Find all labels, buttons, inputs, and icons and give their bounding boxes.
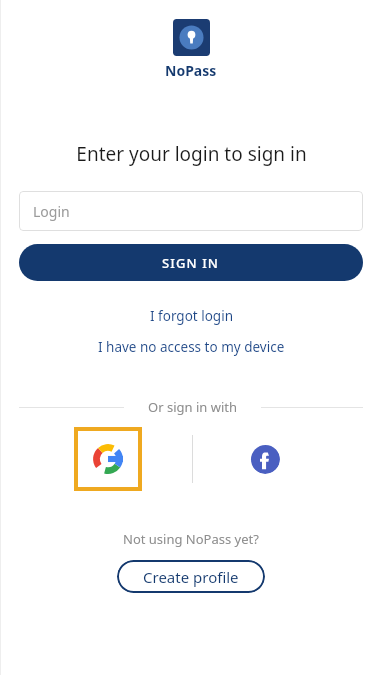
button[interactable]: Sign in with Facebook (250, 444, 280, 474)
staticText: SIGN IN (162, 254, 220, 272)
button[interactable]: I have no access to my device (88, 335, 295, 359)
button[interactable]: Sign in with Google (74, 427, 142, 491)
staticText: Or sign in with (148, 398, 237, 416)
staticText: Not using NoPass yet? (123, 530, 259, 548)
staticText: Create profile (143, 567, 239, 587)
staticText: I forgot login (150, 307, 233, 325)
staticText: Enter your login to sign in (76, 141, 307, 167)
staticText: Login (33, 202, 70, 221)
button[interactable]: I forgot login (140, 304, 243, 328)
button[interactable]: Create profile (117, 560, 265, 593)
button[interactable]: SIGN IN (19, 244, 363, 281)
staticText: NoPass (165, 61, 217, 80)
staticText: I have no access to my device (98, 338, 285, 356)
button[interactable]: Login (19, 191, 363, 231)
